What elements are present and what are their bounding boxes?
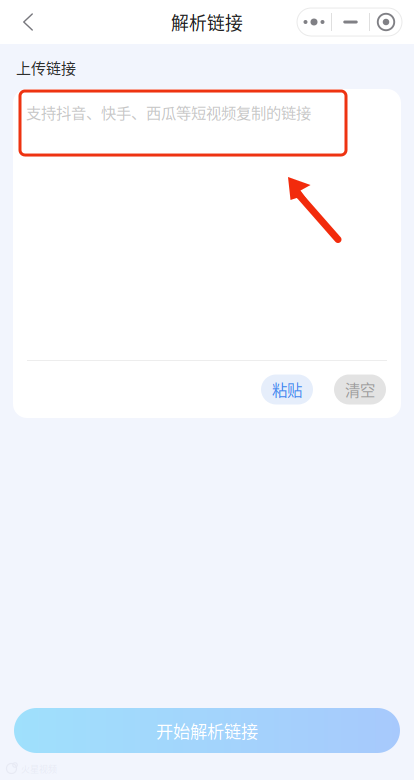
button[interactable]: 开始解析链接 xyxy=(14,708,400,753)
staticText: 支持抖音、快手、西瓜等短视频复制的链接 xyxy=(26,101,311,123)
staticText: 清空 xyxy=(345,378,375,401)
staticText: 解析链接 xyxy=(171,9,243,35)
staticText: 粘贴 xyxy=(272,378,302,401)
staticText: 上传链接 xyxy=(16,57,76,78)
button[interactable]: Close xyxy=(370,8,402,36)
button[interactable]: Minimize xyxy=(332,8,369,36)
button[interactable]: 清空 xyxy=(334,374,386,404)
button[interactable]: 粘贴 xyxy=(261,374,313,404)
button[interactable]: More xyxy=(297,8,331,36)
staticText: 开始解析链接 xyxy=(156,718,258,743)
button[interactable]: Back xyxy=(0,0,56,44)
